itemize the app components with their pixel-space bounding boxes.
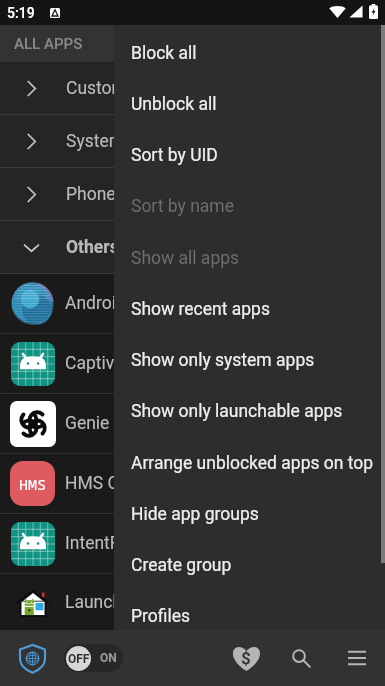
staticText: Show only launchable apps	[131, 401, 343, 422]
staticText: Create group	[131, 555, 232, 576]
staticText: Arrange unblocked apps on top	[131, 453, 374, 474]
button[interactable]: Arrange unblocked apps on top	[114, 438, 385, 489]
staticText: Show recent apps	[131, 299, 270, 320]
staticText: HMS Core	[65, 473, 144, 494]
button[interactable]: Profiles	[114, 591, 385, 642]
button[interactable]: OFF	[64, 644, 123, 672]
button[interactable]: Block all	[114, 28, 385, 79]
staticText: Sort by name	[131, 196, 234, 217]
button[interactable]: IntentFilter	[0, 514, 385, 573]
button[interactable]: Genie	[0, 394, 385, 453]
staticText: Show only system apps	[131, 350, 315, 371]
staticText: Launcher3	[65, 592, 148, 613]
staticText: ON	[100, 651, 117, 665]
button[interactable]: Create group	[114, 540, 385, 591]
staticText: CaptivePortalLogin	[65, 353, 214, 374]
staticText: Genie	[65, 413, 110, 434]
button[interactable]: CaptivePortalLogin	[0, 334, 385, 393]
button[interactable]: Android System	[0, 274, 385, 333]
button[interactable]: VPN shield	[15, 641, 49, 675]
staticText: HMS	[19, 474, 47, 494]
staticText: OFF	[68, 652, 90, 666]
button[interactable]: Show all apps	[114, 233, 385, 284]
staticText: Phone	[66, 184, 116, 205]
button[interactable]: Sort by UID	[114, 130, 385, 181]
staticText: Block all	[131, 43, 197, 64]
staticText: Show all apps	[131, 248, 240, 269]
staticText: System	[66, 131, 125, 152]
staticText: IntentFilter	[65, 533, 149, 554]
staticText: Others	[66, 237, 119, 258]
button[interactable]: Show recent apps	[114, 284, 385, 335]
button[interactable]: Search	[279, 636, 323, 680]
button[interactable]: Unblock all	[114, 79, 385, 130]
staticText: $	[241, 648, 251, 668]
button[interactable]: HMS	[0, 454, 385, 513]
staticText: Android System	[65, 293, 189, 314]
staticText: Customized	[66, 78, 159, 99]
button[interactable]: Phone	[0, 168, 385, 220]
button[interactable]: Sort by name	[114, 181, 385, 232]
staticText: Sort by UID	[131, 145, 218, 166]
button[interactable]: Donate	[224, 636, 268, 680]
button[interactable]: Show only system apps	[114, 335, 385, 386]
button[interactable]: Show only launchable apps	[114, 386, 385, 437]
button[interactable]: Launcher3	[0, 574, 385, 630]
button[interactable]: Menu	[335, 636, 379, 680]
button[interactable]: Hide app groups	[114, 489, 385, 540]
button[interactable]: Customized	[0, 62, 385, 114]
button[interactable]: Others	[0, 221, 385, 273]
staticText: 5:19	[7, 5, 35, 21]
button[interactable]: ALL APPS	[0, 25, 385, 62]
staticText: Unblock all	[131, 94, 217, 115]
staticText: ALL APPS	[14, 35, 83, 53]
staticText: Profiles	[131, 606, 191, 627]
staticText: Hide app groups	[131, 504, 259, 525]
button[interactable]: System	[0, 115, 385, 167]
